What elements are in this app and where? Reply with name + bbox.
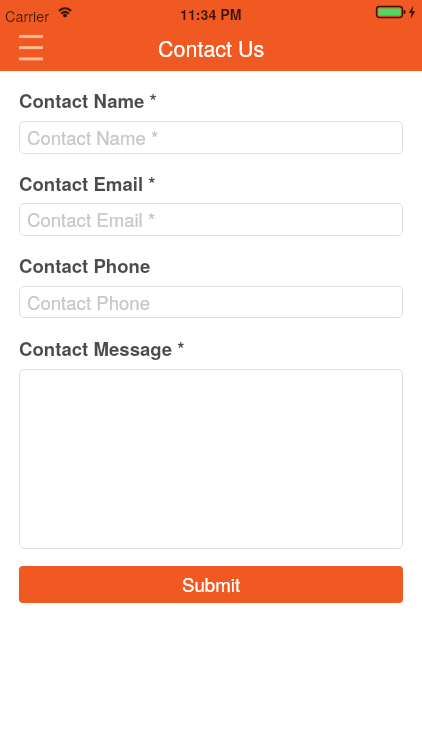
button[interactable]: Submit: [19, 566, 403, 603]
staticText: Submit: [182, 571, 241, 598]
staticText: Contact Name *: [19, 87, 157, 114]
staticText: Contact Phone: [27, 289, 150, 316]
button[interactable]: Open navigation menu: [2, 26, 59, 71]
staticText: Contact Name *: [27, 124, 159, 151]
staticText: Contact Email *: [19, 170, 156, 197]
staticText: Contact Email *: [27, 206, 156, 233]
button[interactable]: Contact Name *: [19, 121, 403, 154]
staticText: 11:34 PM: [180, 4, 242, 24]
staticText: Contact Us: [158, 32, 265, 63]
button[interactable]: Contact Phone: [19, 286, 403, 318]
staticText: Carrier: [5, 5, 49, 26]
staticText: Contact Phone: [19, 252, 151, 279]
staticText: Contact Message *: [19, 335, 185, 362]
button[interactable]: Contact Email *: [19, 203, 403, 236]
button[interactable]: [19, 369, 403, 549]
